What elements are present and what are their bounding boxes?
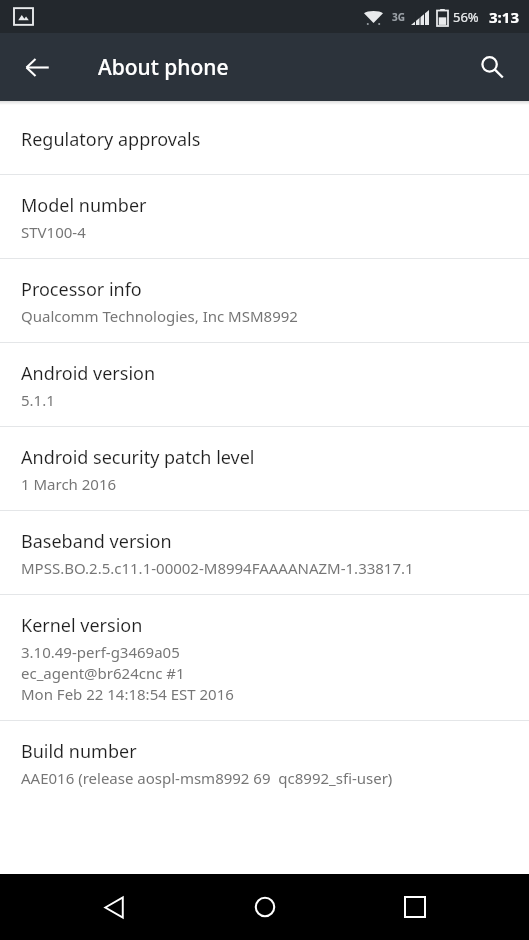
button[interactable]: Baseband version	[0, 511, 529, 594]
staticText: STV100-4	[21, 222, 86, 242]
staticText: Android security patch level	[21, 445, 255, 470]
button[interactable]: Build number	[0, 721, 529, 804]
button[interactable]: Android version	[0, 343, 529, 426]
staticText: Qualcomm Technologies, Inc MSM8992	[21, 306, 298, 326]
staticText: Kernel version	[21, 613, 143, 638]
button[interactable]: Search	[464, 39, 520, 95]
staticText: About phone	[98, 53, 229, 82]
staticText: 5.1.1	[21, 390, 55, 410]
staticText: Model number	[21, 193, 147, 218]
staticText: Android version	[21, 361, 156, 386]
staticText: Processor info	[21, 277, 142, 302]
button[interactable]: Recent apps	[379, 874, 451, 940]
button[interactable]: Android security patch level	[0, 427, 529, 510]
button[interactable]: Model number	[0, 175, 529, 258]
staticText: ec_agent@br624cnc #1	[21, 663, 185, 683]
button[interactable]: Home	[229, 874, 301, 940]
staticText: 3.10.49-perf-g3469a05	[21, 642, 180, 662]
button[interactable]: Back	[78, 874, 150, 940]
staticText: AAE016 (release aospl-msm8992 69 qc8992_…	[21, 768, 393, 788]
button[interactable]: Regulatory approvals	[0, 105, 529, 174]
staticText: Build number	[21, 739, 137, 764]
staticText: Mon Feb 22 14:18:54 EST 2016	[21, 684, 234, 704]
staticText: Baseband version	[21, 529, 172, 554]
button[interactable]: Kernel version	[0, 595, 529, 720]
staticText: 1 March 2016	[21, 474, 117, 494]
staticText: Regulatory approvals	[21, 127, 201, 152]
button[interactable]: Back	[9, 39, 65, 95]
button[interactable]: Processor info	[0, 259, 529, 342]
staticText: MPSS.BO.2.5.c11.1-00002-M8994FAAAANAZM-1…	[21, 558, 414, 578]
staticText: 3:13	[489, 7, 519, 27]
staticText: 3G	[392, 10, 405, 24]
staticText: 56%	[453, 8, 479, 26]
